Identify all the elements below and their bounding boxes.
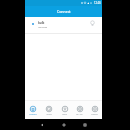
staticText: Connect — [29, 113, 37, 116]
staticText: Lamp — [62, 113, 67, 116]
other: Back — [40, 123, 44, 127]
button[interactable]: Mood — [41, 101, 57, 119]
other: Bulb — [89, 20, 96, 27]
button[interactable]: bulb — [25, 17, 102, 33]
staticText: Mood — [46, 113, 52, 116]
button[interactable]: DIY-ON — [72, 101, 87, 119]
staticText: Connect — [57, 9, 71, 14]
staticText: connected — [38, 26, 48, 29]
staticText: 12:26 — [94, 1, 101, 5]
staticText: DIY-ON — [76, 113, 83, 116]
button[interactable]: Connect — [25, 6, 102, 17]
staticText: Setting — [91, 113, 98, 116]
button[interactable]: Setting — [87, 101, 102, 119]
staticText: bulb — [38, 21, 45, 25]
other: Recents — [83, 123, 87, 127]
other: Home — [62, 123, 66, 127]
button[interactable]: Lamp — [57, 101, 72, 119]
button[interactable]: Connect — [25, 101, 41, 119]
